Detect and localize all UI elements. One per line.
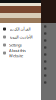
staticText: القرآن الكريم <box>9 27 30 31</box>
button[interactable]: Settings <box>0 41 41 49</box>
staticText: Settings <box>9 42 22 48</box>
staticText: About this Website <box>9 48 26 58</box>
button[interactable]: الأحاديث النبوية <box>0 33 41 41</box>
button[interactable]: القرآن الكريم <box>0 25 41 33</box>
button[interactable]: About this Website <box>0 49 41 57</box>
staticText: الأحاديث النبوية <box>9 35 32 39</box>
